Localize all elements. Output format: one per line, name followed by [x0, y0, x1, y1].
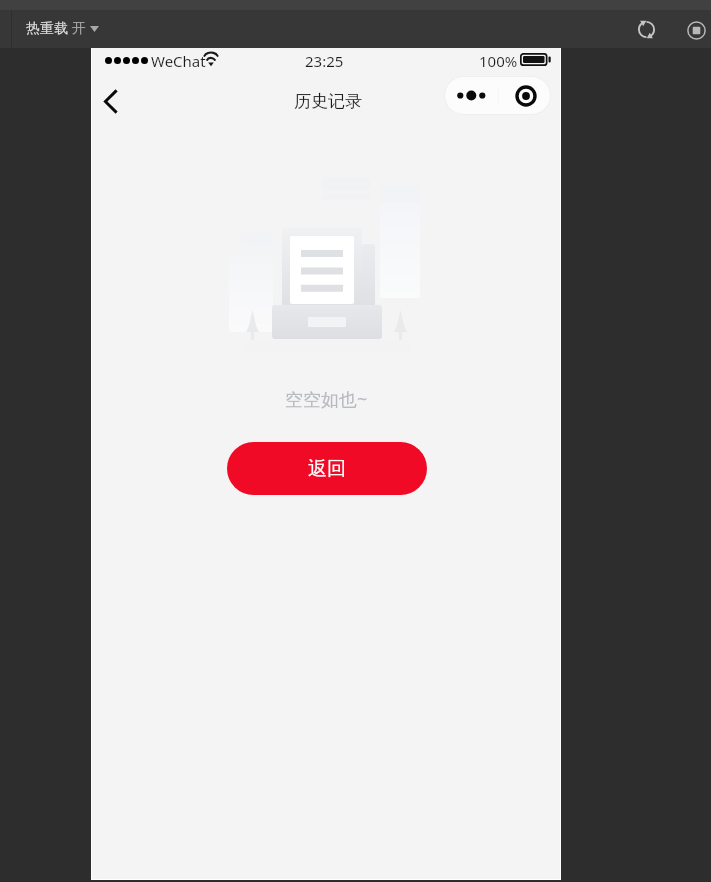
button[interactable]: Close mini program: [499, 77, 550, 114]
staticText: 返回: [308, 457, 346, 481]
staticText: 空空如也~: [285, 387, 368, 412]
button[interactable]: Refresh: [627, 10, 665, 48]
button[interactable]: Stop: [677, 11, 711, 49]
button[interactable]: 返回: [227, 442, 427, 495]
staticText: 23:25: [305, 51, 344, 71]
staticText: 热重载: [26, 20, 68, 38]
staticText: 历史记录: [294, 91, 362, 112]
button[interactable]: 热重载: [26, 10, 107, 48]
staticText: 开: [72, 20, 86, 38]
button[interactable]: More options: [445, 77, 498, 114]
staticText: 100%: [479, 51, 518, 71]
button[interactable]: Back: [94, 78, 128, 122]
staticText: WeChat: [151, 51, 206, 71]
